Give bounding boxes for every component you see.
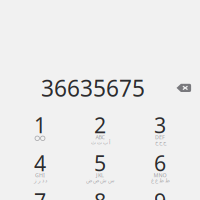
staticText: د ذ ر ز — [33, 177, 46, 184]
button[interactable]: 5 — [70, 150, 130, 194]
staticText: ج ح خ — [154, 139, 165, 146]
staticText: 6 — [154, 149, 166, 177]
button[interactable]: 3 — [130, 112, 190, 156]
staticText: 3 — [154, 111, 166, 139]
staticText: MNO — [153, 172, 166, 179]
button[interactable]: 1 — [10, 112, 70, 156]
staticText: 1 — [34, 111, 46, 139]
button[interactable]: 8 — [70, 188, 130, 200]
button[interactable]: 6 — [130, 150, 190, 194]
staticText: 4 — [34, 149, 46, 177]
button[interactable]: Delete — [171, 77, 197, 99]
staticText: ABC — [95, 134, 104, 141]
staticText: ط ظ ع غ — [150, 177, 169, 184]
staticText: JKL — [96, 172, 104, 179]
staticText: 2 — [94, 111, 106, 139]
staticText: س ش ص ض — [85, 177, 114, 184]
button[interactable]: 4 — [10, 150, 70, 194]
staticText: DEF — [155, 134, 165, 141]
staticText: 36635675 — [41, 73, 145, 103]
staticText: 7 — [34, 187, 46, 200]
button[interactable]: 9 — [130, 188, 190, 200]
staticText: GHI — [35, 172, 45, 179]
button[interactable]: 2 — [70, 112, 130, 156]
staticText: أ ب ت ث — [90, 139, 109, 146]
staticText: 5 — [94, 149, 106, 177]
staticText: 8 — [94, 187, 106, 200]
button[interactable]: 7 — [10, 188, 70, 200]
button[interactable]: 36635675 — [33, 75, 153, 101]
staticText: 9 — [154, 187, 166, 200]
